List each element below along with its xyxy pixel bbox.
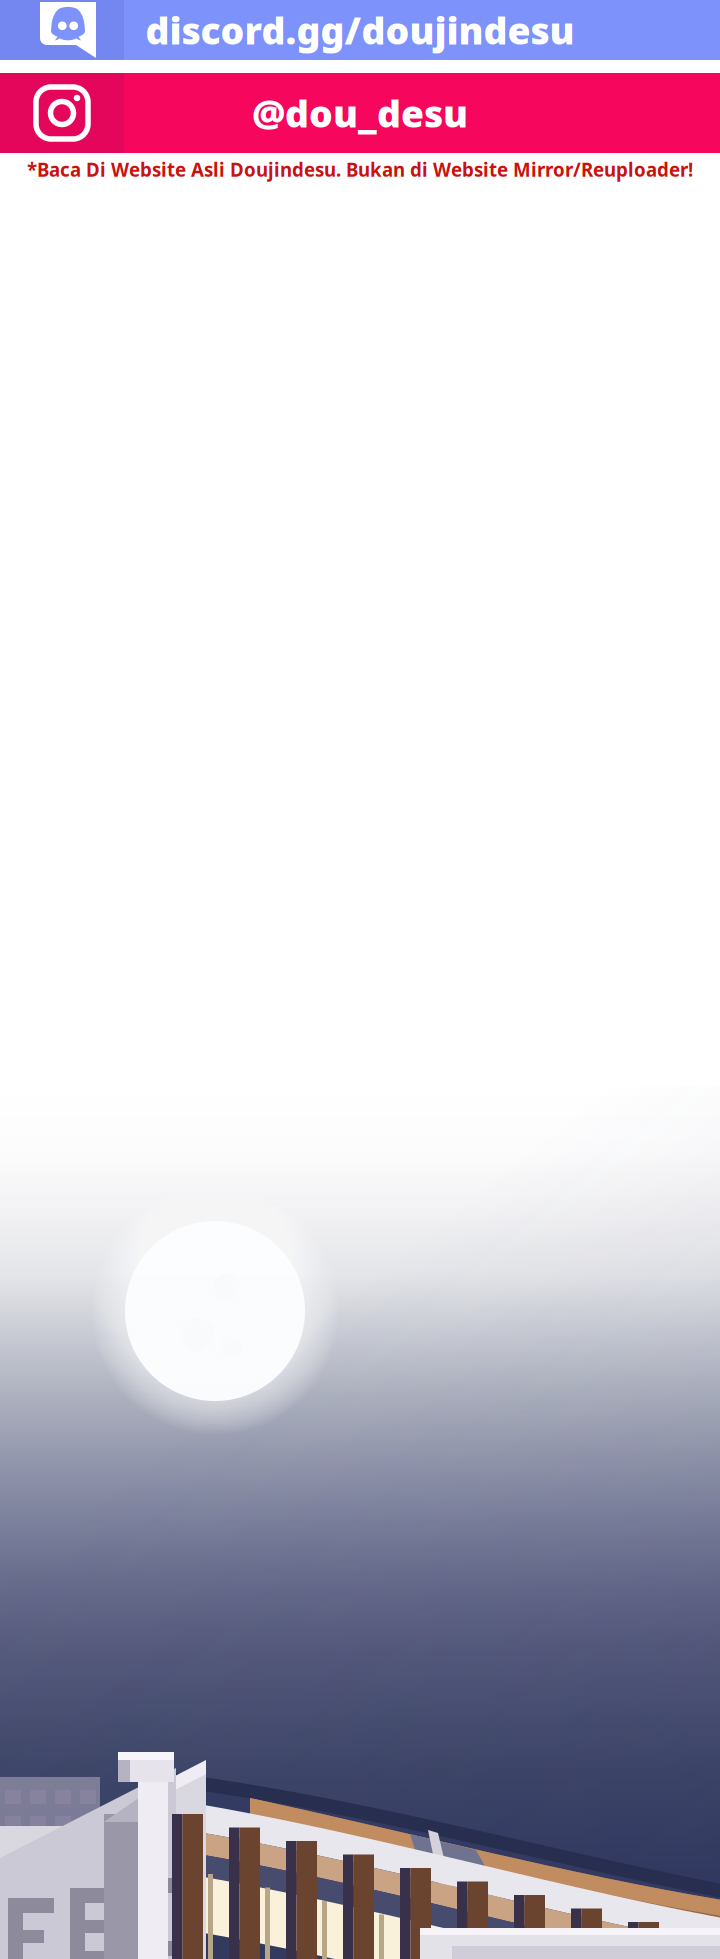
- staticText: @dou_desu: [252, 88, 468, 138]
- staticText: *Baca Di Website Asli Doujindesu. Bukan …: [27, 157, 693, 182]
- button[interactable]: Follow @dou_desu on Instagram: [0, 73, 720, 153]
- staticText: discord.gg/doujindesu: [145, 5, 574, 55]
- button[interactable]: Join the Discord server discord.gg/douji…: [0, 0, 720, 60]
